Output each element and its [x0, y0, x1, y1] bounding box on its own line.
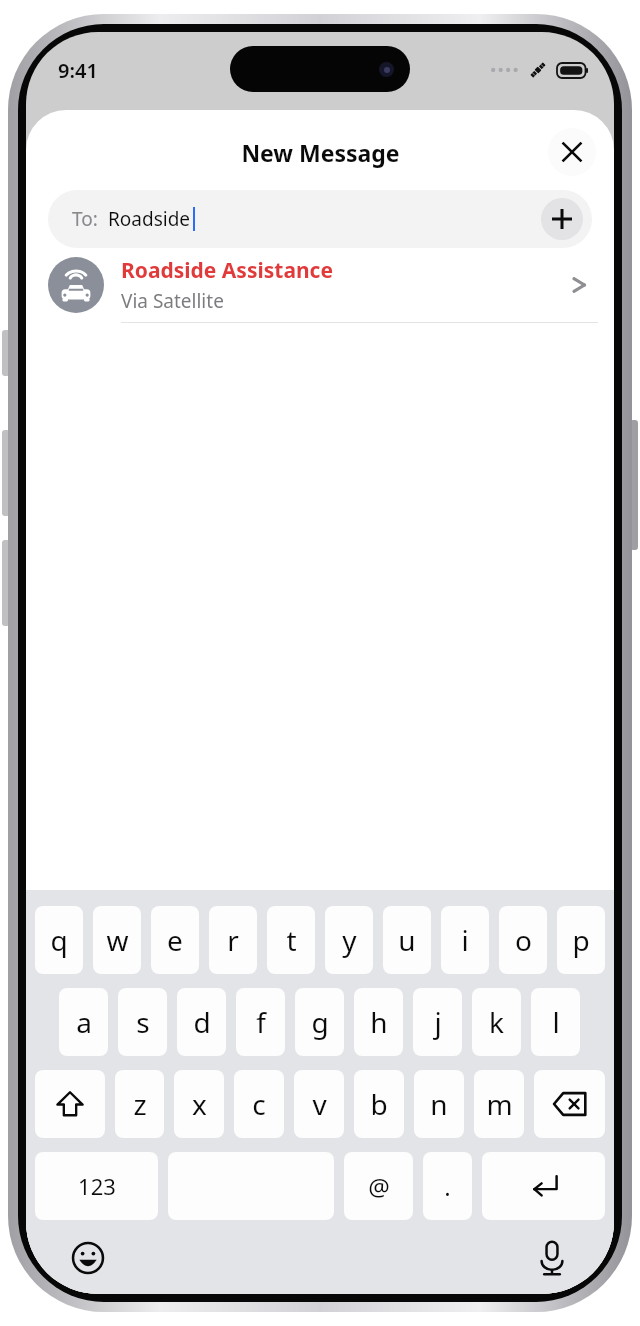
button[interactable]: v	[294, 1070, 344, 1138]
button[interactable]: Shift	[35, 1070, 105, 1138]
staticText: k	[489, 1003, 504, 1041]
button[interactable]: b	[354, 1070, 404, 1138]
button[interactable]: o	[499, 906, 547, 974]
staticText: i	[461, 921, 469, 959]
staticText: Via Satellite	[121, 288, 224, 314]
button[interactable]: g	[295, 988, 344, 1056]
button[interactable]: j	[413, 988, 462, 1056]
button[interactable]: x	[174, 1070, 224, 1138]
button[interactable]: @	[344, 1152, 413, 1220]
button[interactable]: t	[267, 906, 315, 974]
staticText: n	[430, 1085, 448, 1123]
button[interactable]: Close	[548, 128, 596, 176]
staticText: t	[286, 921, 297, 959]
button[interactable]: k	[472, 988, 521, 1056]
staticText: 9:41	[58, 57, 98, 84]
staticText: a	[76, 1003, 92, 1041]
button[interactable]: z	[115, 1070, 164, 1138]
button[interactable]: r	[209, 906, 257, 974]
button[interactable]: Emoji	[66, 1236, 110, 1280]
staticText: Roadside Assistance	[121, 256, 333, 285]
button[interactable]: Backspace	[534, 1070, 605, 1138]
button[interactable]: Return	[482, 1152, 605, 1220]
staticText: Roadside	[108, 206, 191, 232]
button[interactable]: n	[414, 1070, 464, 1138]
staticText: c	[252, 1085, 266, 1123]
button[interactable]: .	[423, 1152, 472, 1220]
staticText: o	[515, 921, 532, 959]
button[interactable]: w	[93, 906, 141, 974]
button[interactable]: l	[531, 988, 580, 1056]
staticText: .	[444, 1170, 451, 1203]
staticText: m	[486, 1085, 513, 1123]
button[interactable]: p	[557, 906, 605, 974]
staticText: New Message	[241, 137, 400, 168]
staticText: g	[311, 1003, 329, 1041]
button[interactable]: Add contact	[541, 198, 583, 240]
staticText: w	[106, 921, 129, 959]
button[interactable]: c	[234, 1070, 284, 1138]
button[interactable]: i	[441, 906, 489, 974]
button[interactable]: q	[35, 906, 83, 974]
button[interactable]: d	[177, 988, 226, 1056]
button[interactable]: y	[325, 906, 373, 974]
staticText: @	[368, 1170, 390, 1203]
staticText: z	[133, 1085, 147, 1123]
staticText: x	[192, 1085, 207, 1123]
staticText: p	[572, 921, 590, 959]
button[interactable]: 123	[35, 1152, 158, 1220]
staticText: j	[434, 1003, 442, 1041]
staticText: v	[312, 1085, 327, 1123]
staticText: e	[167, 921, 183, 959]
staticText: s	[136, 1003, 150, 1041]
staticText: l	[552, 1003, 560, 1041]
staticText: b	[370, 1085, 388, 1123]
staticText: y	[342, 921, 357, 959]
staticText: To:	[72, 206, 98, 232]
button[interactable]: u	[383, 906, 431, 974]
button[interactable]: Roadside Assistance	[26, 248, 614, 322]
staticText: h	[370, 1003, 388, 1041]
button[interactable]: s	[118, 988, 167, 1056]
button[interactable]: Dictate	[530, 1236, 574, 1280]
staticText: u	[398, 921, 416, 959]
button[interactable]: h	[354, 988, 403, 1056]
button[interactable]: a	[59, 988, 108, 1056]
staticText: r	[227, 921, 239, 959]
button[interactable]: To:	[48, 190, 592, 248]
button[interactable]: f	[236, 988, 285, 1056]
button[interactable]: e	[151, 906, 199, 974]
button[interactable]: m	[474, 1070, 524, 1138]
staticText: f	[256, 1003, 266, 1041]
staticText: q	[50, 921, 68, 959]
staticText: d	[193, 1003, 211, 1041]
staticText: 123	[78, 1171, 116, 1201]
